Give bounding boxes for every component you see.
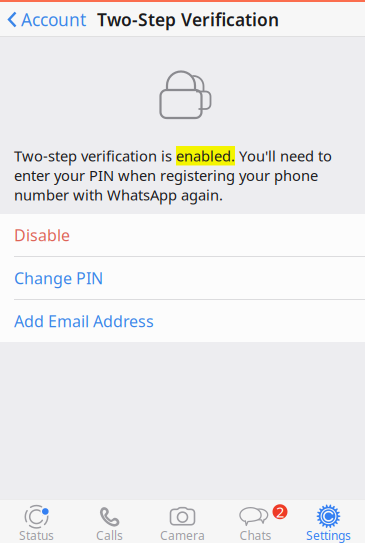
- button[interactable]: Add Email Address: [0, 300, 365, 342]
- staticText: Chats: [239, 527, 271, 543]
- button[interactable]: 2: [219, 499, 292, 543]
- staticText: Add Email Address: [14, 310, 154, 332]
- button[interactable]: Camera: [146, 499, 219, 543]
- button[interactable]: Account: [0, 2, 92, 37]
- staticText: Account: [21, 8, 86, 31]
- button[interactable]: Settings: [292, 499, 365, 543]
- staticText: Status: [19, 527, 54, 543]
- button[interactable]: Status: [0, 499, 73, 543]
- staticText: 2: [276, 502, 284, 521]
- staticText: Two-Step Verification: [97, 8, 279, 31]
- button[interactable]: Change PIN: [0, 257, 365, 299]
- staticText: Change PIN: [14, 267, 103, 289]
- staticText: Disable: [14, 224, 70, 246]
- staticText: Camera: [160, 527, 205, 543]
- button[interactable]: Calls: [73, 499, 146, 543]
- staticText: Settings: [306, 527, 351, 543]
- button[interactable]: Disable: [0, 214, 365, 256]
- staticText: Two-step verification is enabled. You'll…: [14, 146, 332, 204]
- staticText: Calls: [96, 527, 123, 543]
